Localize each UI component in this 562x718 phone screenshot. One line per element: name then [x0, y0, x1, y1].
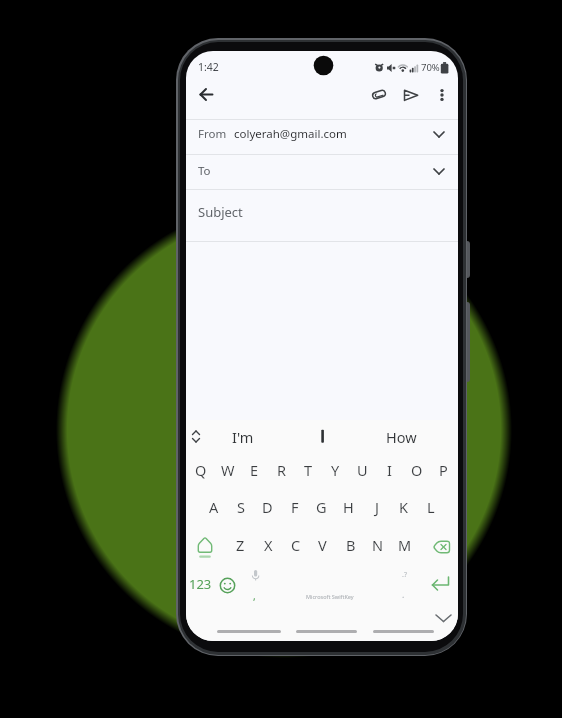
- button[interactable]: E: [241, 457, 268, 483]
- button[interactable]: [186, 189, 458, 241]
- staticText: X: [264, 535, 273, 555]
- staticText: E: [250, 460, 259, 480]
- staticText: 70%: [421, 61, 440, 74]
- button[interactable]: X: [255, 532, 282, 558]
- button[interactable]: F: [281, 494, 308, 520]
- button[interactable]: [190, 428, 202, 445]
- button[interactable]: [434, 612, 453, 624]
- button[interactable]: D: [254, 494, 281, 520]
- staticText: Q: [195, 460, 207, 480]
- staticText: I: [387, 460, 392, 480]
- staticText: P: [439, 460, 448, 480]
- staticText: 123: [189, 575, 212, 593]
- staticText: Subject: [198, 203, 243, 221]
- staticText: From: [198, 126, 227, 142]
- button[interactable]: K: [390, 494, 417, 520]
- button[interactable]: [428, 575, 453, 595]
- button[interactable]: [197, 536, 214, 559]
- button[interactable]: [219, 577, 236, 594]
- staticText: Microsoft SwiftKey: [306, 593, 354, 600]
- button[interactable]: W: [214, 457, 241, 483]
- button[interactable]: M: [391, 532, 418, 558]
- button[interactable]: U: [349, 457, 376, 483]
- staticText: F: [291, 497, 299, 517]
- staticText: I'm: [232, 427, 254, 447]
- button[interactable]: I: [376, 457, 403, 483]
- staticText: To: [198, 163, 211, 179]
- button[interactable]: [186, 119, 458, 154]
- staticText: 1:42: [198, 60, 219, 74]
- button[interactable]: J: [363, 494, 390, 520]
- button[interactable]: G: [308, 494, 335, 520]
- staticText: How: [386, 427, 417, 447]
- button[interactable]: T: [295, 457, 322, 483]
- button[interactable]: [217, 630, 281, 633]
- button[interactable]: Z: [227, 532, 254, 558]
- staticText: Y: [331, 460, 340, 480]
- staticText: colyerah@gmail.com: [234, 126, 347, 142]
- button[interactable]: R: [268, 457, 295, 483]
- button[interactable]: L: [417, 494, 444, 520]
- button[interactable]: [373, 630, 434, 633]
- staticText: L: [427, 497, 435, 517]
- button[interactable]: How: [371, 424, 431, 450]
- staticText: .?: [402, 570, 407, 580]
- button[interactable]: V: [309, 532, 336, 558]
- staticText: D: [262, 497, 273, 517]
- button[interactable]: A: [200, 494, 227, 520]
- button[interactable]: C: [282, 532, 309, 558]
- button[interactable]: N: [364, 532, 391, 558]
- button[interactable]: Y: [322, 457, 349, 483]
- staticText: G: [316, 497, 327, 517]
- staticText: U: [357, 460, 368, 480]
- button[interactable]: [296, 630, 357, 633]
- staticText: K: [399, 497, 408, 517]
- staticText: Z: [236, 535, 245, 555]
- staticText: A: [209, 497, 219, 517]
- button[interactable]: H: [335, 494, 362, 520]
- button[interactable]: B: [337, 532, 364, 558]
- button[interactable]: [435, 85, 449, 105]
- button[interactable]: 123: [186, 571, 217, 597]
- staticText: V: [318, 535, 327, 555]
- button[interactable]: I'm: [213, 424, 273, 450]
- button[interactable]: [371, 87, 387, 102]
- staticText: C: [291, 535, 301, 555]
- button[interactable]: [186, 154, 458, 189]
- staticText: B: [346, 535, 356, 555]
- staticText: S: [237, 497, 245, 517]
- staticText: W: [221, 460, 235, 480]
- button[interactable]: [403, 89, 419, 102]
- staticText: T: [304, 460, 313, 480]
- staticText: O: [411, 460, 423, 480]
- button[interactable]: Q: [187, 457, 214, 483]
- button[interactable]: [197, 86, 215, 103]
- button[interactable]: S: [227, 494, 254, 520]
- staticText: N: [372, 535, 384, 555]
- staticText: .: [402, 588, 405, 600]
- staticText: ,: [253, 589, 256, 603]
- staticText: M: [398, 535, 412, 555]
- staticText: R: [277, 460, 287, 480]
- button[interactable]: P: [430, 457, 457, 483]
- button[interactable]: [307, 426, 338, 447]
- staticText: J: [375, 497, 379, 517]
- button[interactable]: O: [403, 457, 430, 483]
- button[interactable]: [432, 540, 451, 555]
- staticText: H: [343, 497, 354, 517]
